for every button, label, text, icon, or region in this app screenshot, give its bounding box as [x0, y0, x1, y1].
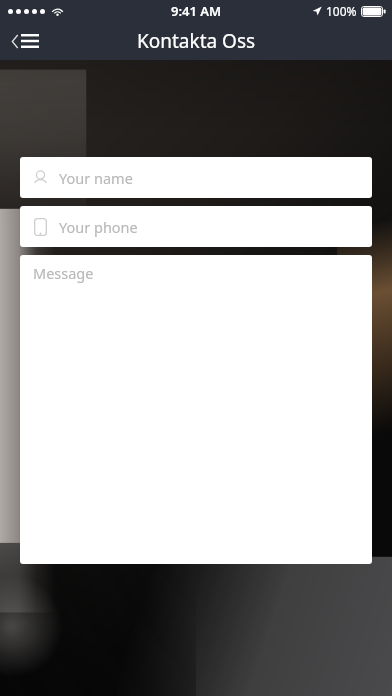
button[interactable]: Message — [20, 255, 372, 564]
staticText: Message — [33, 263, 94, 283]
staticText: Your phone — [59, 217, 138, 237]
button[interactable]: Your phone — [20, 206, 372, 247]
staticText: Kontakta Oss — [137, 28, 256, 54]
staticText: 9:41 AM — [171, 2, 222, 20]
staticText: Your name — [59, 168, 133, 188]
staticText: 100% — [326, 3, 357, 19]
button[interactable]: Your name — [20, 157, 372, 198]
button[interactable]: Menu — [6, 28, 45, 54]
